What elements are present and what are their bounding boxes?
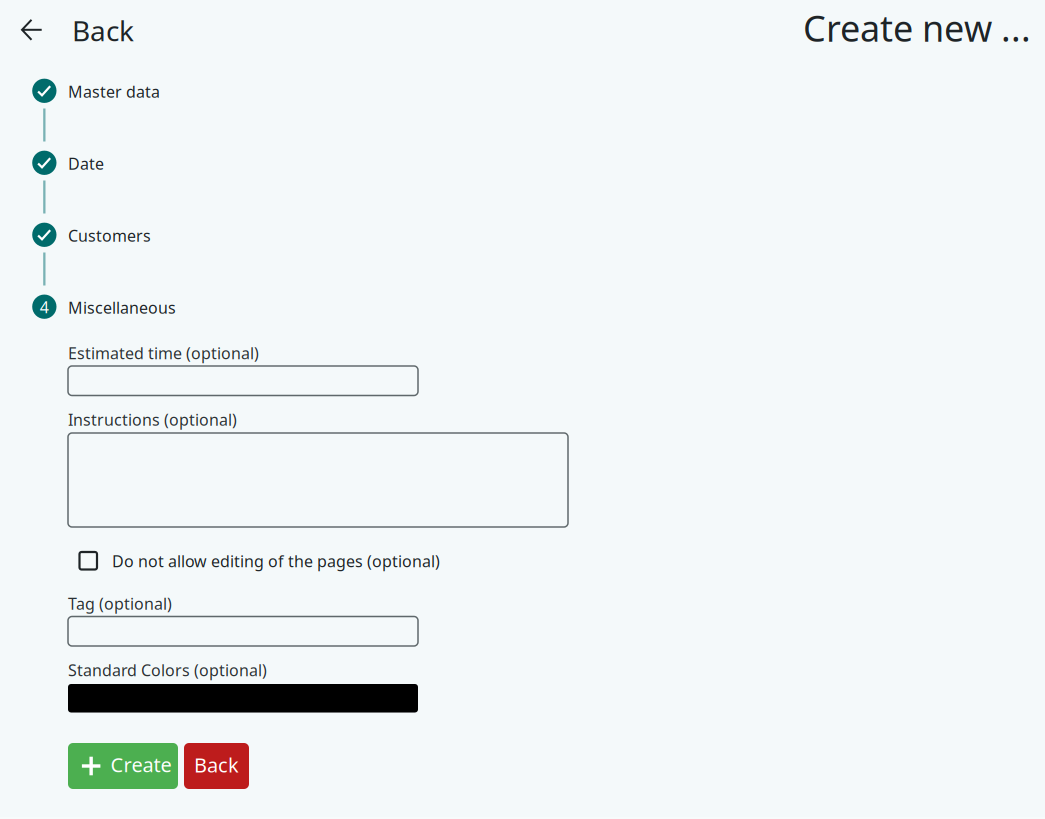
staticText: Do not allow editing of the pages (optio… xyxy=(112,550,440,572)
button[interactable]: Back xyxy=(0,0,152,59)
button[interactable]: Create xyxy=(0,0,110,46)
button[interactable]: 4 xyxy=(0,0,160,24)
button[interactable]: Customers xyxy=(0,0,160,24)
button[interactable]: Do not allow editing of the pages (optio… xyxy=(0,0,372,24)
button[interactable]: Back xyxy=(0,0,65,46)
staticText: Master data xyxy=(68,81,160,102)
staticText: 4 xyxy=(40,296,49,318)
staticText: Estimated time (optional) xyxy=(68,342,259,364)
staticText: Miscellaneous xyxy=(68,297,176,318)
staticText: Create xyxy=(110,751,171,778)
staticText: Standard Colors (optional) xyxy=(68,659,267,681)
button[interactable]: Date xyxy=(0,0,160,24)
staticText: Instructions (optional) xyxy=(68,409,237,430)
staticText: Back xyxy=(72,12,134,49)
staticText: Create new ... xyxy=(803,4,1031,52)
staticText: Customers xyxy=(68,225,151,246)
button[interactable]: Master data xyxy=(0,0,160,24)
staticText: Back xyxy=(194,751,239,778)
staticText: Date xyxy=(68,153,104,174)
staticText: Tag (optional) xyxy=(68,593,172,614)
